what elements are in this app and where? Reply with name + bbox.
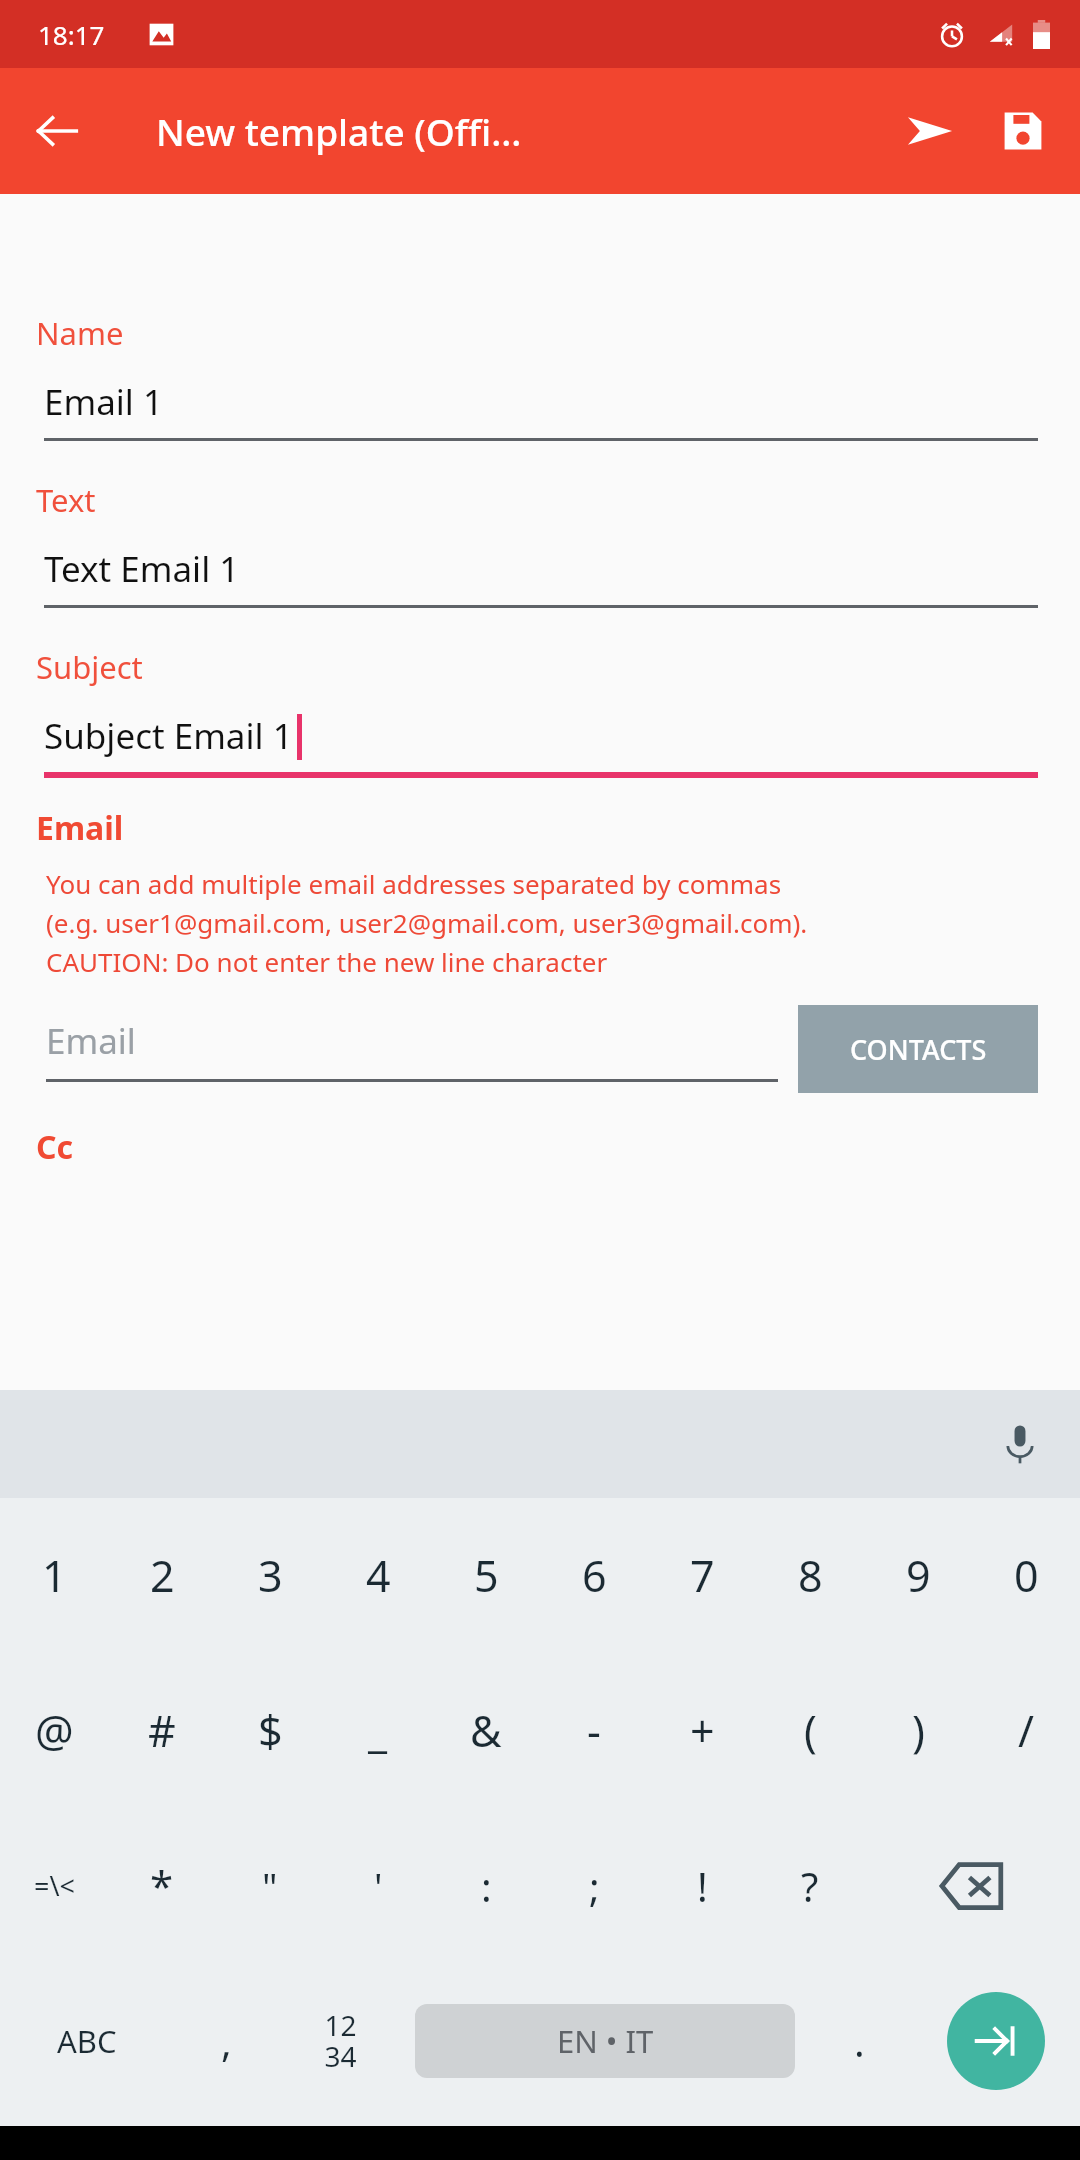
button[interactable]: ; <box>540 1808 648 1963</box>
button[interactable]: 1 <box>0 1498 108 1653</box>
staticText: 9 <box>906 1546 931 1605</box>
button[interactable]: , <box>174 1963 278 2118</box>
button[interactable]: : <box>432 1808 540 1963</box>
staticText: ) <box>912 1701 925 1760</box>
button[interactable]: 12 34 <box>278 1963 403 2118</box>
button[interactable]: 3 <box>216 1498 324 1653</box>
staticText: 18:17 <box>38 17 105 52</box>
button[interactable]: # <box>108 1653 216 1808</box>
staticText: $ <box>258 1701 283 1760</box>
staticText: 12 34 <box>324 2006 357 2076</box>
staticText: * <box>150 1857 174 1914</box>
staticText: Subject <box>36 646 143 688</box>
button[interactable]: Back <box>16 90 98 172</box>
staticText: Name <box>36 312 124 354</box>
staticText: Email 1 <box>44 378 164 426</box>
staticText: ABC <box>57 2020 117 2062</box>
button[interactable]: 0 <box>972 1498 1080 1653</box>
staticText: ( <box>804 1701 817 1760</box>
staticText: & <box>470 1701 502 1760</box>
staticText: @ <box>35 1701 74 1760</box>
button[interactable]: ( <box>756 1653 864 1808</box>
button[interactable]: ? <box>756 1808 864 1963</box>
button[interactable]: =\< <box>0 1808 108 1963</box>
staticText: 2 <box>150 1546 175 1605</box>
button[interactable]: $ <box>216 1653 324 1808</box>
button[interactable]: ) <box>864 1653 972 1808</box>
button[interactable]: - <box>540 1653 648 1808</box>
button[interactable]: ' <box>324 1808 432 1963</box>
staticText: : <box>481 1859 492 1913</box>
staticText: - <box>587 1701 601 1760</box>
staticText: 6 <box>582 1546 607 1605</box>
button[interactable]: ABC <box>0 1963 174 2118</box>
button[interactable]: Next <box>947 1992 1045 2090</box>
button[interactable]: @ <box>0 1653 108 1808</box>
button[interactable]: . <box>807 1963 911 2118</box>
staticText: 5 <box>474 1546 499 1605</box>
staticText: ' <box>374 1860 383 1912</box>
staticText: _ <box>368 1701 388 1760</box>
staticText: " <box>262 1860 278 1912</box>
button[interactable]: / <box>972 1653 1080 1808</box>
staticText: 8 <box>798 1546 823 1605</box>
button[interactable]: Voice input <box>978 1402 1062 1486</box>
staticText: Subject Email 1 <box>44 712 293 760</box>
staticText: 0 <box>1014 1546 1039 1605</box>
button[interactable]: EN • IT <box>415 2004 795 2078</box>
staticText: You can add multiple email addresses sep… <box>46 866 808 979</box>
button[interactable]: * <box>108 1808 216 1963</box>
staticText: 4 <box>366 1546 391 1605</box>
staticText: Email <box>46 1017 136 1065</box>
button[interactable]: " <box>216 1808 324 1963</box>
staticText: + <box>690 1701 715 1760</box>
staticText: . <box>854 2014 865 2068</box>
staticText: Email <box>36 806 124 850</box>
button[interactable]: + <box>648 1653 756 1808</box>
button[interactable]: ! <box>648 1808 756 1963</box>
staticText: ; <box>589 1859 600 1913</box>
staticText: / <box>1018 1701 1034 1760</box>
staticText: EN • IT <box>557 2020 654 2062</box>
button[interactable]: 8 <box>756 1498 864 1653</box>
staticText: ! <box>697 1859 708 1913</box>
staticText: CONTACTS <box>850 1031 987 1068</box>
staticText: 1 <box>42 1546 67 1605</box>
staticText: New template (Offi... <box>156 106 522 156</box>
staticText: , <box>221 2014 232 2068</box>
button[interactable]: _ <box>324 1653 432 1808</box>
staticText: Text <box>36 479 96 521</box>
button[interactable]: & <box>432 1653 540 1808</box>
staticText: =\< <box>34 1867 75 1904</box>
button[interactable]: 7 <box>648 1498 756 1653</box>
button[interactable]: 4 <box>324 1498 432 1653</box>
button[interactable]: CONTACTS <box>798 1005 1038 1093</box>
button[interactable]: 6 <box>540 1498 648 1653</box>
button[interactable]: 2 <box>108 1498 216 1653</box>
button[interactable]: Send <box>880 81 980 181</box>
staticText: Cc <box>36 1125 74 1169</box>
button[interactable]: 5 <box>432 1498 540 1653</box>
staticText: 7 <box>690 1546 715 1605</box>
staticText: ? <box>801 1859 819 1913</box>
staticText: Text Email 1 <box>44 545 240 593</box>
button[interactable]: Save <box>980 81 1066 181</box>
button[interactable]: 9 <box>864 1498 972 1653</box>
button[interactable]: Backspace <box>864 1808 1080 1963</box>
staticText: # <box>148 1701 176 1760</box>
staticText: 3 <box>258 1546 283 1605</box>
